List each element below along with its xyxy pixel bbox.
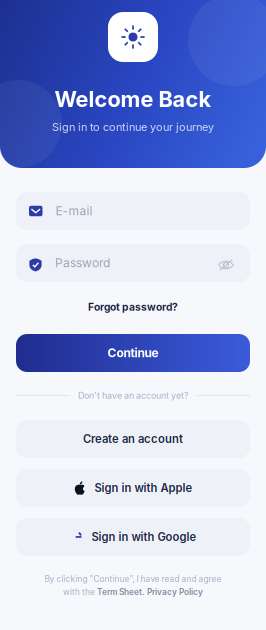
button[interactable]: Sign in with Google [16, 518, 250, 556]
staticText: Create an account [83, 432, 183, 446]
staticText: E-mail [55, 204, 92, 218]
button[interactable]: Continue [16, 334, 250, 372]
button[interactable]: Password [16, 244, 250, 282]
staticText: Don't have an account yet? [78, 390, 188, 401]
staticText: Sign in with Apple [94, 481, 192, 495]
staticText: By clicking "Continue", I have read and … [44, 574, 221, 584]
staticText: Sign in to continue your journey [52, 120, 214, 133]
staticText: with the [63, 587, 97, 597]
staticText: Password [55, 256, 110, 270]
button[interactable]: Sign in with Apple [16, 469, 250, 507]
staticText: Privacy Policy [147, 587, 203, 597]
staticText: Continue [107, 346, 158, 360]
staticText: Term Sheet. [97, 587, 145, 597]
button[interactable]: Privacy Policy [147, 587, 203, 597]
staticText: Sign in with Google [91, 530, 196, 544]
button[interactable]: Forgot password? [16, 299, 250, 315]
button[interactable]: Create an account [16, 420, 250, 458]
staticText: Forgot password? [88, 301, 178, 313]
staticText: Welcome Back [54, 86, 211, 112]
button[interactable]: Term Sheet. [97, 587, 145, 597]
button[interactable]: E-mail [16, 192, 250, 230]
